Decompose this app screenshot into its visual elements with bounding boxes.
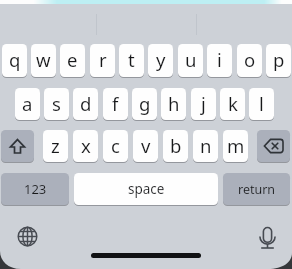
staticText: m [227,133,245,158]
staticText: v [141,133,151,158]
staticText: return [238,181,276,198]
button[interactable]: q [2,44,27,77]
button[interactable]: space [74,173,218,205]
button[interactable] [1,130,34,162]
button[interactable]: l [249,88,274,120]
staticText: g [139,91,151,116]
button[interactable]: n [193,130,218,162]
button[interactable]: p [266,44,291,77]
button[interactable]: o [237,44,262,77]
staticText: l [259,91,264,116]
button[interactable]: f [103,88,128,120]
staticText: a [22,91,33,116]
button[interactable]: s [44,88,69,120]
staticText: q [9,47,21,72]
staticText: k [228,91,238,116]
staticText: d [80,91,92,116]
staticText: f [112,91,119,116]
button[interactable] [13,222,42,251]
staticText: space [128,180,165,198]
button[interactable]: x [73,130,98,162]
button[interactable]: i [207,44,232,77]
staticText: s [52,91,61,116]
button[interactable]: g [132,88,157,120]
staticText: p [273,47,285,72]
staticText: j [201,91,206,116]
button[interactable]: b [163,130,188,162]
staticText: 123 [24,180,47,198]
staticText: w [36,47,51,72]
staticText: x [81,133,91,158]
button[interactable]: return [223,173,290,205]
button[interactable]: z [43,130,68,162]
staticText: t [128,47,135,72]
button[interactable]: w [31,44,56,77]
staticText: z [51,133,60,158]
staticText: u [185,47,197,72]
staticText: i [217,47,222,72]
button[interactable] [257,130,290,162]
button[interactable]: m [223,130,248,162]
button[interactable]: u [178,44,203,77]
staticText: h [168,91,180,116]
button[interactable]: a [15,88,40,120]
button[interactable]: 123 [1,173,69,205]
staticText: y [156,47,166,72]
button[interactable]: j [191,88,216,120]
staticText: n [200,133,212,158]
button[interactable]: d [73,88,98,120]
staticText: b [170,133,182,158]
staticText: o [244,47,256,72]
button[interactable]: e [60,44,85,77]
button[interactable]: c [103,130,128,162]
staticText: e [67,47,78,72]
button[interactable]: v [133,130,158,162]
button[interactable]: t [119,44,144,77]
button[interactable]: r [90,44,115,77]
button[interactable]: h [161,88,186,120]
button[interactable]: y [148,44,173,77]
staticText: c [111,133,120,158]
button[interactable]: k [220,88,245,120]
button[interactable] [253,223,282,252]
staticText: r [99,47,107,72]
